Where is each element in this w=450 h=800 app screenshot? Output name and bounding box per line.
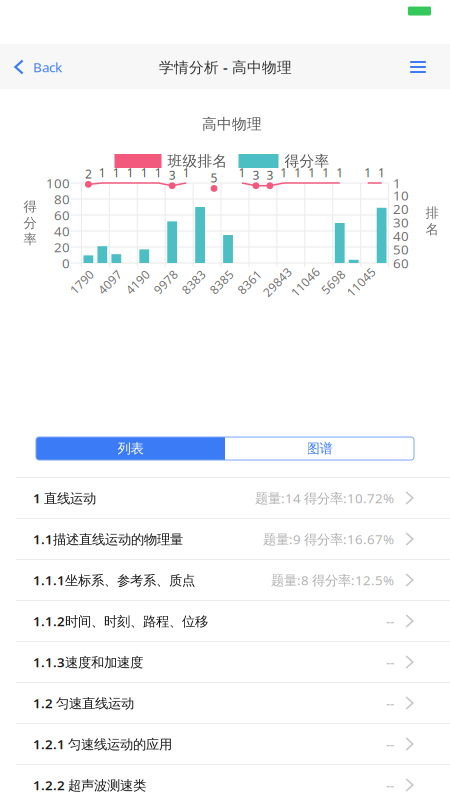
staticText: 5698 <box>319 274 347 290</box>
staticText: 1 <box>322 164 329 180</box>
button[interactable]: 1.1描述直线运动的物理量 <box>0 518 450 559</box>
staticText: 60 <box>393 254 409 272</box>
staticText: 得分率 <box>284 152 329 170</box>
staticText: 1.2.2 超声波测速类 <box>33 776 146 794</box>
staticText: 1 <box>393 174 401 192</box>
staticText: 1 直线运动 <box>33 489 96 507</box>
staticText: 2 <box>85 166 92 182</box>
button[interactable]: 1.2.1 匀速线运动的应用 <box>0 723 450 764</box>
staticText: 8385 <box>207 274 235 290</box>
staticText: 1 <box>364 164 371 180</box>
staticText: 1.1描述直线运动的物理量 <box>33 530 183 548</box>
staticText: 1.1.1坐标系、参考系、质点 <box>33 571 195 589</box>
staticText: -- <box>386 612 394 630</box>
staticText: 1 <box>183 164 190 180</box>
staticText: 60 <box>54 206 70 224</box>
staticText: 分 <box>23 215 36 231</box>
staticText: 列表 <box>117 440 143 457</box>
staticText: 1 <box>127 164 134 180</box>
staticText: 1 <box>294 164 301 180</box>
staticText: 0 <box>62 254 70 272</box>
button[interactable]: Battery <box>408 6 431 15</box>
staticText: 8383 <box>180 274 208 290</box>
staticText: 题量:14 得分率:10.72% <box>255 489 394 507</box>
staticText: 4190 <box>124 274 152 290</box>
staticText: 1 <box>280 164 287 180</box>
button[interactable]: 1.2.2 超声波测速类 <box>0 764 450 800</box>
staticText: 1.2.1 匀速线运动的应用 <box>33 735 172 753</box>
staticText: 4097 <box>96 274 124 290</box>
staticText: 1 <box>155 164 162 180</box>
staticText: 3 <box>252 167 259 183</box>
staticText: 1 <box>336 164 343 180</box>
staticText: 题量:8 得分率:12.5% <box>271 571 394 589</box>
button[interactable]: 列表 <box>36 437 225 460</box>
staticText: -- <box>386 694 394 712</box>
staticText: 5 <box>211 170 218 186</box>
staticText: 得 <box>23 198 36 215</box>
button[interactable]: Back <box>4 48 76 86</box>
staticText: 8361 <box>235 274 263 290</box>
button[interactable]: 1.1.2时间、时刻、路程、位移 <box>0 600 450 641</box>
staticText: 1 <box>378 164 385 180</box>
staticText: -- <box>386 776 394 794</box>
staticText: 3 <box>266 167 273 183</box>
staticText: 40 <box>393 227 409 245</box>
staticText: 名 <box>425 221 438 237</box>
staticText: 1.1.2时间、时刻、路程、位移 <box>33 612 208 630</box>
button[interactable]: Menu <box>398 49 438 85</box>
staticText: 率 <box>23 231 36 248</box>
staticText: 题量:9 得分率:16.67% <box>263 530 394 548</box>
button[interactable]: 1.2 匀速直线运动 <box>0 682 450 723</box>
button[interactable]: 1.1.3速度和加速度 <box>0 641 450 682</box>
staticText: 20 <box>54 238 70 256</box>
staticText: 班级排名 <box>167 152 227 170</box>
staticText: 1.2 匀速直线运动 <box>33 694 134 712</box>
staticText: 29843 <box>260 274 295 290</box>
staticText: 30 <box>393 213 409 231</box>
staticText: 11046 <box>288 274 323 290</box>
staticText: 1 <box>308 164 315 180</box>
staticText: 9978 <box>152 274 180 290</box>
staticText: 1 <box>99 164 106 180</box>
staticText: -- <box>386 653 394 671</box>
button[interactable]: 图谱 <box>225 437 414 460</box>
staticText: Back <box>33 58 62 76</box>
button[interactable]: 1 直线运动 <box>0 477 450 518</box>
staticText: 1 <box>238 164 245 180</box>
staticText: -- <box>386 735 394 753</box>
staticText: 学情分析 - 高中物理 <box>159 57 292 77</box>
staticText: 1.1.3速度和加速度 <box>33 653 143 671</box>
staticText: 100 <box>46 174 70 192</box>
staticText: 高中物理 <box>202 115 262 133</box>
staticText: 3 <box>169 167 176 183</box>
button[interactable]: 1.1.1坐标系、参考系、质点 <box>0 559 450 600</box>
staticText: 排 <box>425 205 438 221</box>
staticText: 1790 <box>68 274 96 290</box>
staticText: 80 <box>54 190 70 208</box>
staticText: 11045 <box>344 274 379 290</box>
staticText: 50 <box>393 241 409 258</box>
staticText: 10 <box>393 186 409 204</box>
staticText: 1 <box>141 164 148 180</box>
staticText: 40 <box>54 222 70 240</box>
staticText: 图谱 <box>306 440 332 457</box>
staticText: 1 <box>113 164 120 180</box>
staticText: 20 <box>393 200 409 218</box>
